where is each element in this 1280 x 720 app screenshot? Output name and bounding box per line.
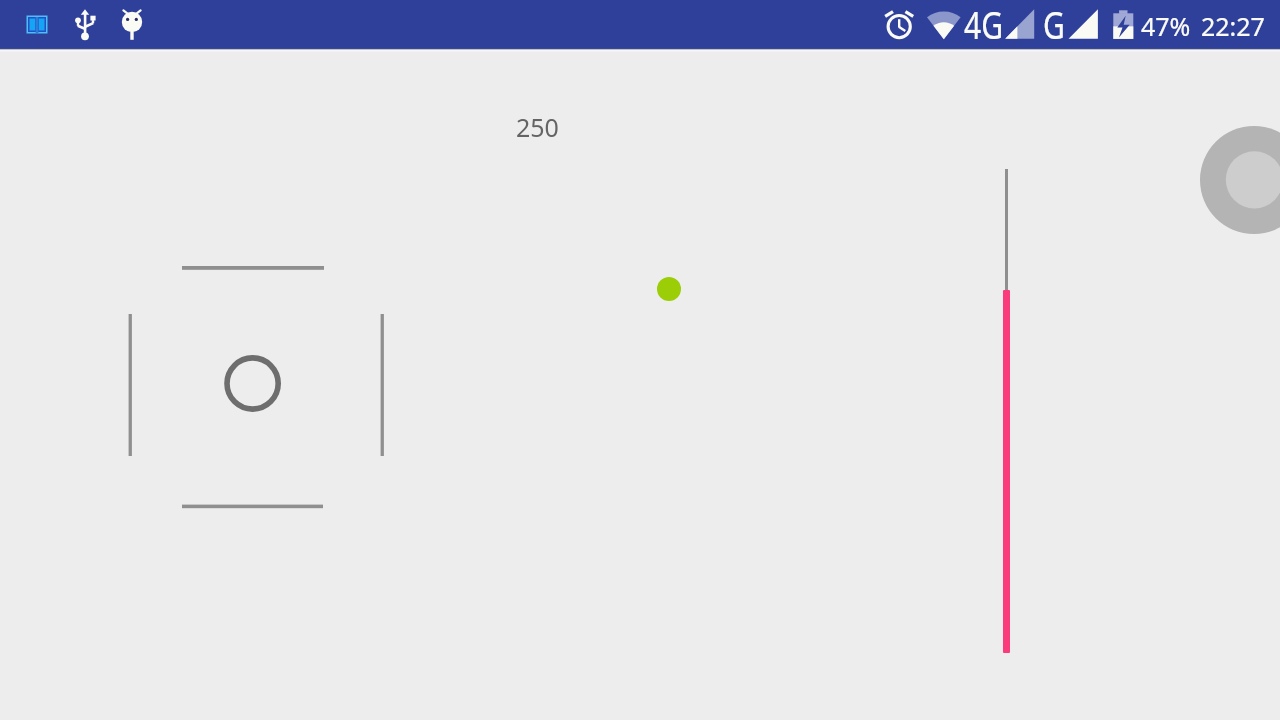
staticText: 47% bbox=[1141, 9, 1191, 43]
staticText: 4G bbox=[964, 0, 1003, 50]
button[interactable]: Rotary dial bbox=[1200, 126, 1280, 234]
staticText: 22:27 bbox=[1201, 9, 1265, 43]
button[interactable]: Direction pad bbox=[126, 264, 386, 511]
staticText: 250 bbox=[516, 110, 559, 144]
staticText: G bbox=[1043, 0, 1065, 50]
